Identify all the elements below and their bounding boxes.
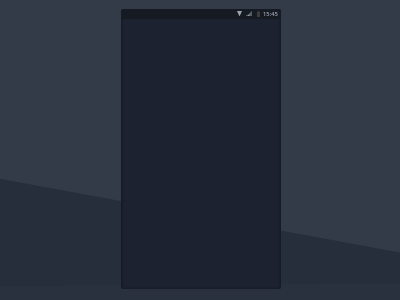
button[interactable]: Wi-Fi connected [121, 9, 281, 289]
other: Wi-Fi connected [237, 11, 242, 16]
other: Battery [257, 11, 260, 17]
staticText: 15:45 [263, 10, 278, 18]
other: Mobile signal [246, 11, 252, 16]
